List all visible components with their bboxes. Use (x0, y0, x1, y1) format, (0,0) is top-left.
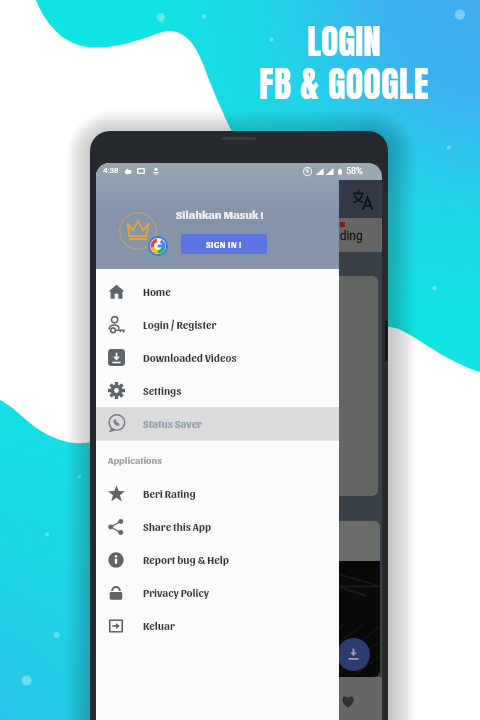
staticText: Beri Rating (143, 487, 196, 500)
staticText: Privacy Policy (143, 586, 209, 599)
button[interactable]: Download video (337, 638, 370, 671)
button[interactable]: Like (340, 693, 356, 709)
button[interactable]: SIGN IN ! (181, 234, 267, 254)
button[interactable]: Home (96, 275, 339, 308)
button[interactable]: Share this App (96, 510, 339, 543)
button[interactable]: Status Saver (96, 407, 339, 440)
staticText: Home (143, 285, 171, 298)
staticText: Downloaded Videos (143, 351, 237, 364)
button[interactable]: Report bug & Help (96, 543, 339, 576)
button[interactable]: Privacy Policy (96, 576, 339, 609)
button[interactable]: Translate (348, 185, 376, 213)
staticText: Report bug & Help (143, 553, 229, 566)
button[interactable]: Keluar (96, 609, 339, 642)
button[interactable]: Settings (96, 374, 339, 407)
button[interactable]: Download video (98, 521, 380, 677)
staticText: 58% (346, 166, 363, 177)
staticText: SIGN IN ! (206, 239, 242, 250)
staticText: FB & GOOGLE (244, 57, 444, 111)
staticText: Status Saver (143, 417, 202, 430)
button[interactable]: Beri Rating (96, 477, 339, 510)
staticText: Keluar (143, 619, 175, 632)
button[interactable] (100, 276, 378, 496)
button[interactable]: Login / Register (96, 308, 339, 341)
staticText: Trending (316, 229, 363, 243)
staticText: Login / Register (143, 318, 217, 331)
staticText: Silahkan Masuk ! (176, 207, 264, 221)
staticText: LOGIN (244, 15, 444, 68)
button[interactable]: Downloaded Videos (96, 341, 339, 374)
staticText: 4:38 (103, 166, 119, 175)
staticText: Share this App (143, 520, 212, 533)
staticText: Settings (143, 384, 182, 397)
staticText: Applications (108, 454, 162, 466)
